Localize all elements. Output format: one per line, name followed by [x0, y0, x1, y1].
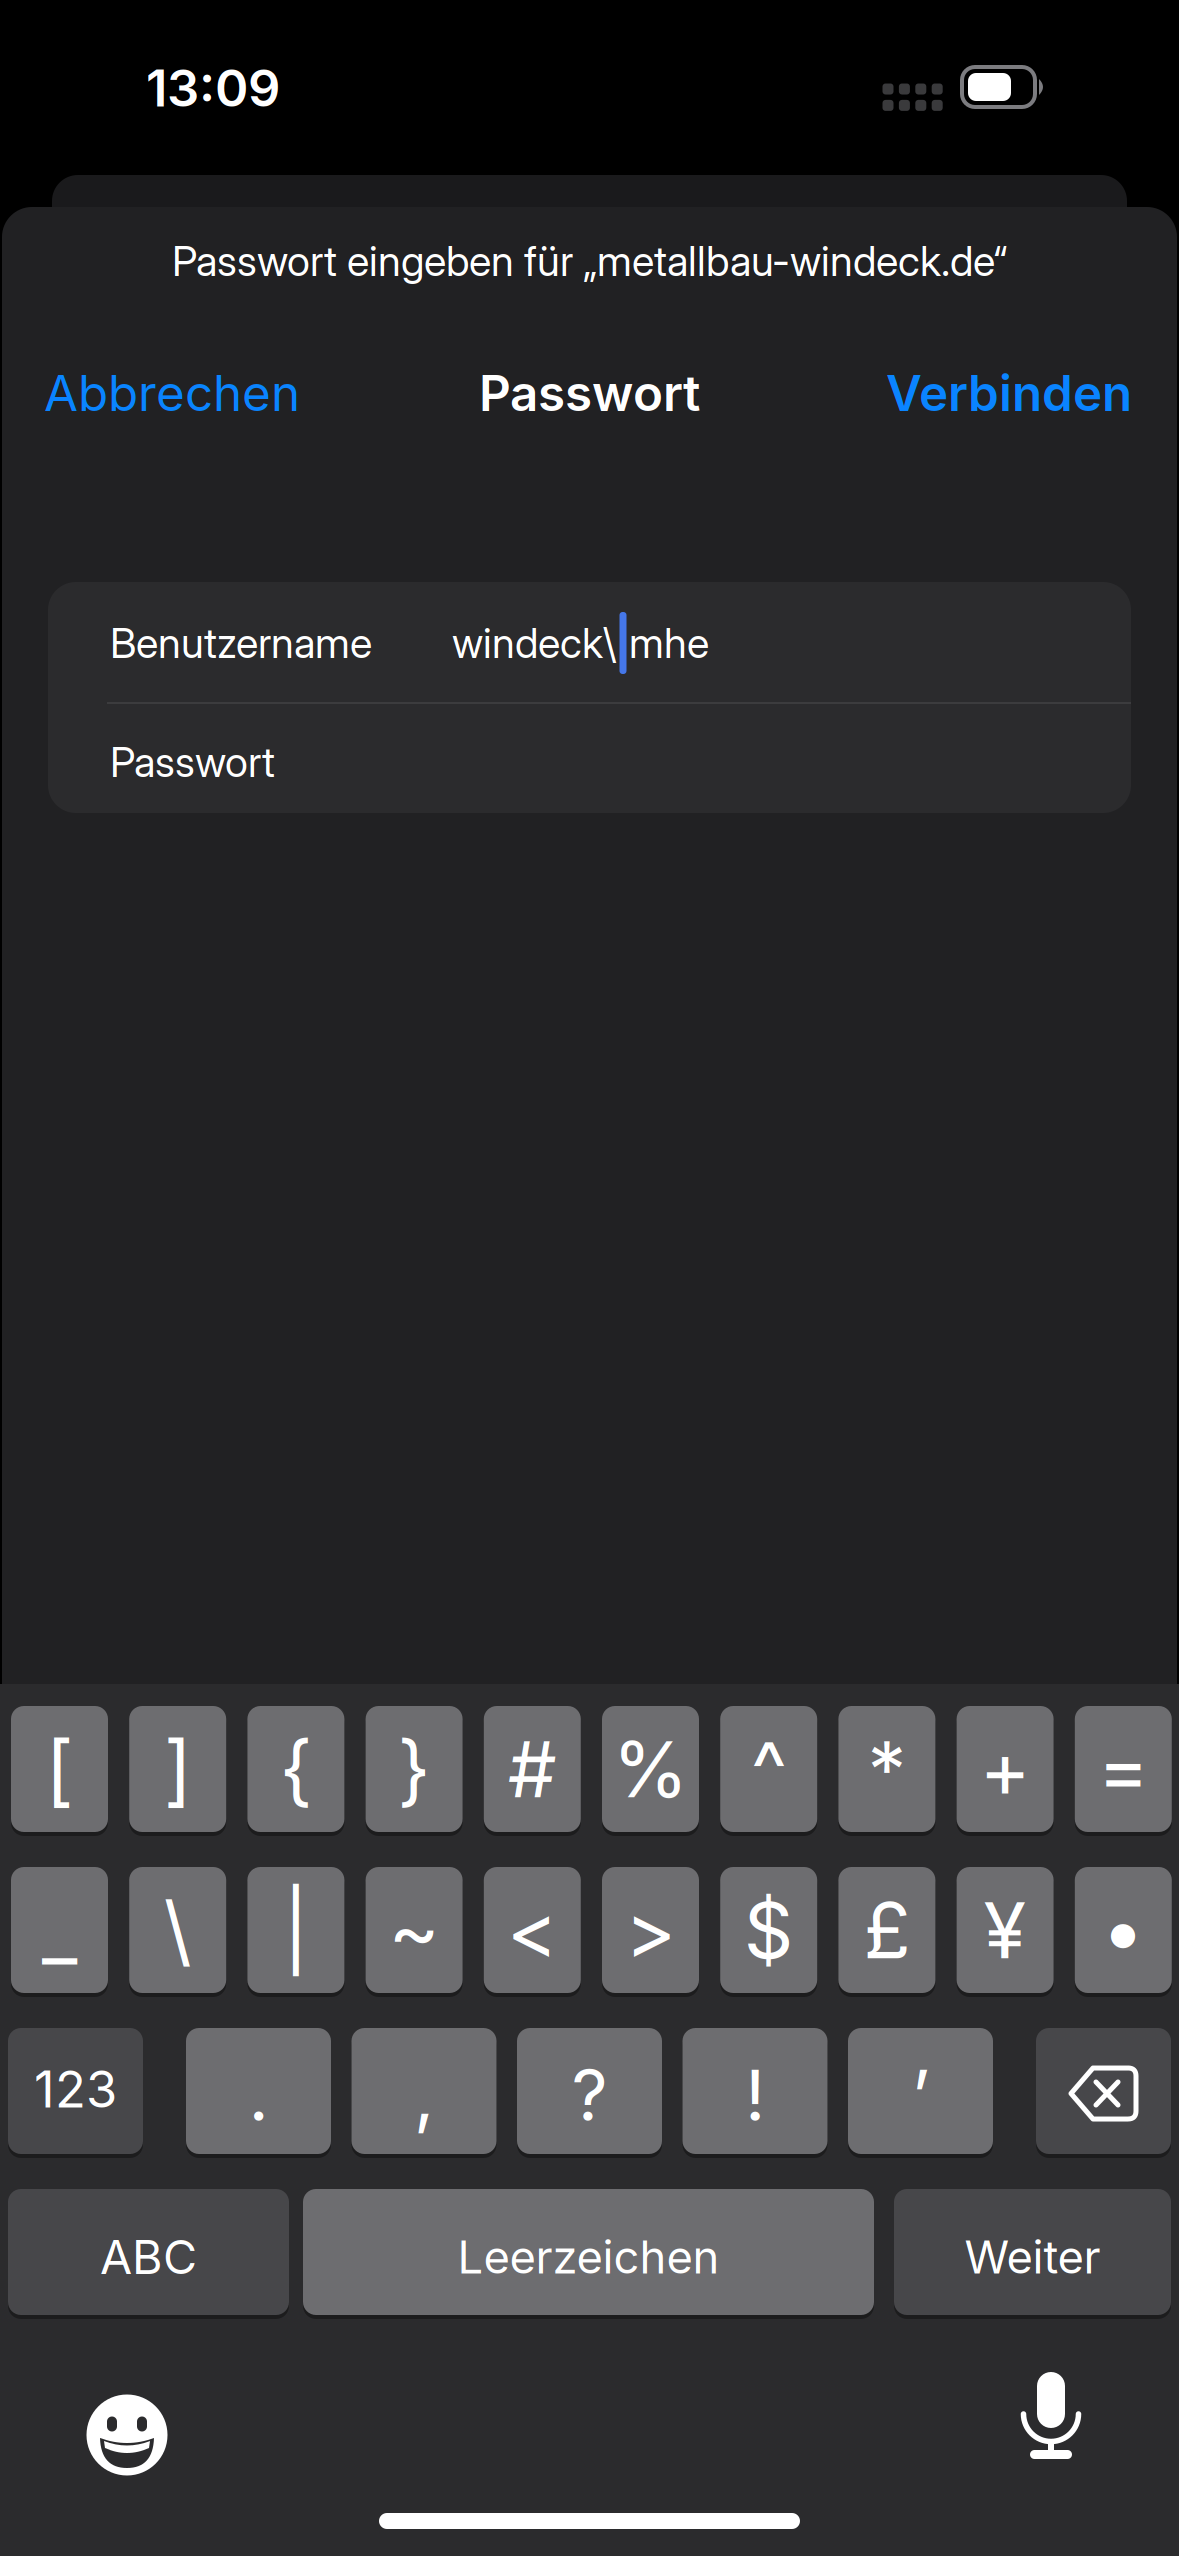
staticText: Passwort eingeben für „metallbau-windeck… [172, 237, 1007, 285]
staticText: \ [164, 1884, 192, 1976]
staticText: < [507, 1884, 558, 1976]
button[interactable]: < [484, 1864, 581, 1996]
staticText: mhe [629, 619, 709, 667]
staticText: , [414, 2053, 434, 2137]
staticText: * [867, 1723, 906, 1815]
button[interactable]: Passwort [110, 727, 710, 797]
staticText: [ [45, 1723, 73, 1815]
button[interactable]: } [366, 1703, 463, 1835]
button[interactable]: Löschen [1036, 2025, 1171, 2157]
staticText: ] [164, 1723, 192, 1815]
staticText: } [398, 1723, 431, 1815]
staticText: ! [745, 2053, 765, 2137]
button[interactable]: Leerzeichen [303, 2186, 874, 2318]
staticText: > [625, 1884, 676, 1976]
staticText: Leerzeichen [457, 2230, 719, 2284]
button[interactable]: Verbinden [886, 364, 1132, 422]
staticText: ? [571, 2053, 607, 2137]
button[interactable]: £ [838, 1864, 935, 1996]
button[interactable]: $ [720, 1864, 817, 1996]
button[interactable]: % [602, 1703, 699, 1835]
staticText: Benutzername [110, 619, 372, 667]
staticText: { [279, 1723, 312, 1815]
staticText: Verbinden [886, 364, 1132, 422]
button[interactable]: * [838, 1703, 935, 1835]
staticText: ^ [751, 1723, 787, 1815]
staticText: ’ [911, 2053, 929, 2137]
button[interactable]: ^ [720, 1703, 817, 1835]
button[interactable]: ] [129, 1703, 226, 1835]
button[interactable]: ? [517, 2025, 662, 2157]
button[interactable]: ABC [8, 2186, 289, 2318]
button[interactable]: ¥ [957, 1864, 1054, 1996]
staticText: | [283, 1884, 309, 1976]
staticText: £ [863, 1884, 910, 1976]
staticText: # [508, 1723, 557, 1815]
staticText: • [1101, 1884, 1145, 1976]
button[interactable]: \ [129, 1864, 226, 1996]
button[interactable]: [ [11, 1703, 108, 1835]
staticText: + [980, 1723, 1031, 1815]
button[interactable]: ~ [366, 1864, 463, 1996]
button[interactable]: { [247, 1703, 344, 1835]
button[interactable]: Benutzername [110, 608, 710, 678]
staticText: $ [744, 1884, 794, 1976]
button[interactable]: Emoji [67, 2375, 187, 2495]
staticText: Abbrechen [44, 364, 300, 422]
button[interactable]: ! [682, 2025, 827, 2157]
button[interactable]: # [484, 1703, 581, 1835]
button[interactable]: , [351, 2025, 496, 2157]
staticText: windeck\ [452, 619, 617, 667]
button[interactable]: | [247, 1864, 344, 1996]
staticText: _ [42, 1884, 77, 1976]
staticText: Passwort [479, 364, 700, 422]
button[interactable]: + [957, 1703, 1054, 1835]
staticText: 13:09 [146, 58, 280, 118]
staticText: % [612, 1723, 688, 1815]
staticText: = [1098, 1723, 1149, 1815]
button[interactable]: . [186, 2025, 331, 2157]
staticText: . [248, 2053, 268, 2137]
button[interactable]: • [1075, 1864, 1172, 1996]
staticText: 123 [34, 2059, 117, 2119]
button[interactable]: = [1075, 1703, 1172, 1835]
staticText: Weiter [964, 2230, 1100, 2284]
button[interactable]: > [602, 1864, 699, 1996]
button[interactable]: Abbrechen [44, 364, 300, 422]
button[interactable]: 123 [8, 2025, 143, 2157]
button[interactable]: ’ [848, 2025, 993, 2157]
staticText: ~ [389, 1884, 440, 1976]
button[interactable]: _ [11, 1864, 108, 1996]
staticText: Passwort [110, 738, 275, 786]
staticText: ABC [100, 2229, 197, 2285]
button[interactable]: Weiter [894, 2186, 1171, 2318]
staticText: ¥ [984, 1884, 1027, 1976]
button[interactable]: Diktieren [996, 2372, 1106, 2492]
